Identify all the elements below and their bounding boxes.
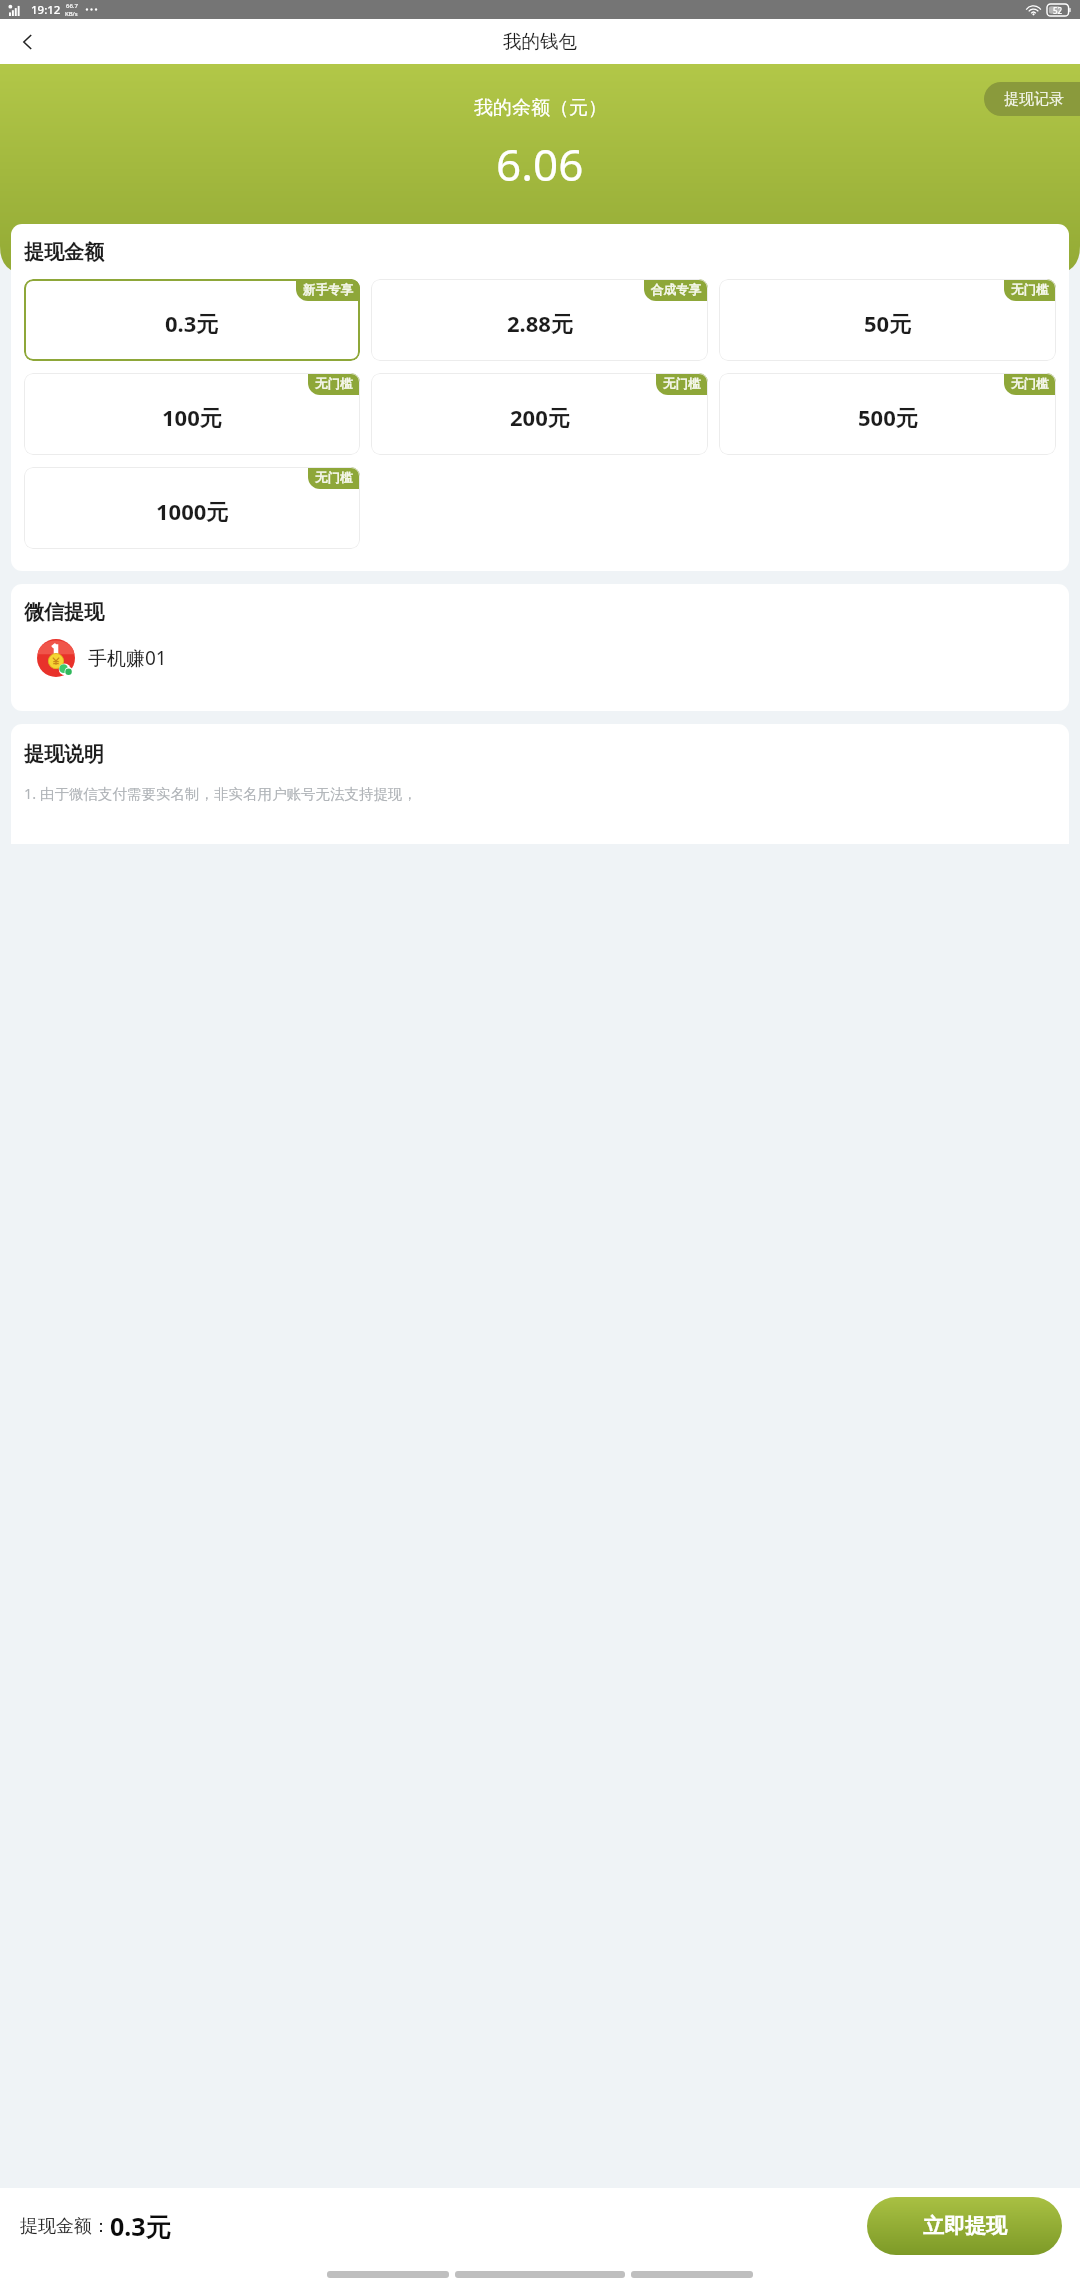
staticText: 500元 [858,402,918,432]
staticText: 100元 [162,402,222,432]
staticText: 提现金额： [20,2215,110,2238]
button[interactable]: 合成专享 [371,279,708,361]
staticText: 0.3元 [110,2209,171,2243]
staticText: 52 [1053,5,1063,16]
staticText: 提现说明 [24,742,104,767]
staticText: KB/s [65,10,78,18]
button[interactable]: 无门槛 [371,373,708,455]
button[interactable]: 无门槛 [24,373,360,455]
staticText: 合成专享 [651,282,701,298]
staticText: 66.7 [66,2,78,10]
staticText: 提现记录 [1004,90,1064,109]
staticText: 手机赚01 [88,645,167,671]
staticText: 1000元 [156,496,229,526]
staticText: 无门槛 [315,376,353,392]
button[interactable]: 立即提现 [867,2197,1062,2255]
button[interactable]: 无门槛 [24,467,360,549]
button[interactable]: 无门槛 [719,279,1056,361]
staticText: 2.88元 [507,308,573,338]
button[interactable]: 手机赚01 [24,639,1056,677]
staticText: 我的钱包 [503,30,577,53]
staticText: 50元 [864,308,912,338]
staticText: 1. 由于微信支付需要实名制，非实名用户账号无法支持提现， [24,783,417,803]
staticText: 无门槛 [1011,282,1049,298]
button[interactable]: 提现记录 [984,82,1080,116]
staticText: 无门槛 [663,376,701,392]
button[interactable]: 返回 [8,22,48,62]
staticText: 200元 [510,402,570,432]
button[interactable]: 无门槛 [719,373,1056,455]
staticText: 无门槛 [315,470,353,486]
staticText: 微信提现 [24,600,104,625]
staticText: 提现金额 [24,240,104,265]
staticText: 0.3元 [165,308,219,338]
staticText: 我的余额（元） [474,96,607,120]
staticText: 6.06 [496,134,584,194]
button[interactable]: 新手专享 [24,279,360,361]
staticText: 无门槛 [1011,376,1049,392]
staticText: 19:12 [31,2,61,18]
staticText: 立即提现 [923,2213,1007,2239]
staticText: 新手专享 [303,282,353,298]
